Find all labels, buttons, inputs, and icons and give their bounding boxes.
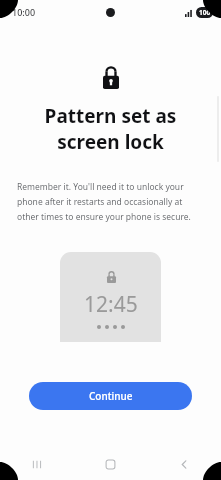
staticText: Pattern set as screen lock (16, 103, 205, 155)
staticText: 12:45 (84, 290, 138, 319)
staticText: 10:00 (12, 6, 36, 18)
staticText: 100 (199, 8, 211, 17)
staticText: Remember it. You'll need it to unlock yo… (17, 181, 204, 222)
button[interactable]: Back (147, 448, 221, 480)
button[interactable]: Continue (29, 382, 192, 410)
staticText: Continue (89, 389, 133, 403)
button[interactable]: Home (73, 448, 147, 480)
button[interactable]: Recent apps (0, 448, 73, 480)
